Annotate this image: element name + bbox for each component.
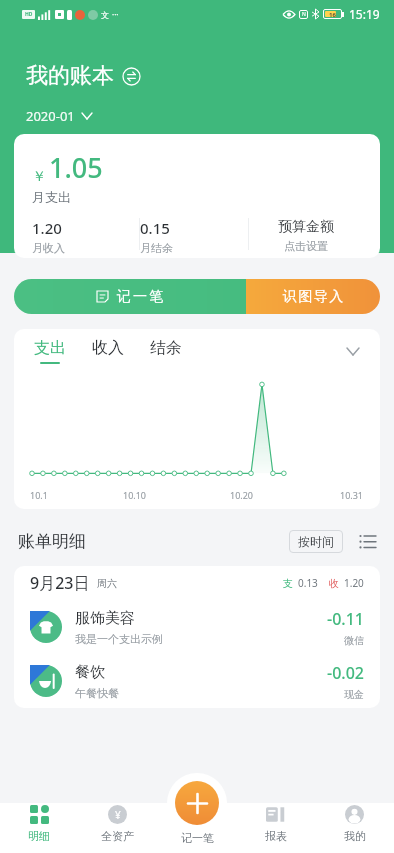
staticText: 10.1 <box>30 489 48 501</box>
staticText: 餐饮 <box>75 663 105 682</box>
staticText: 收入 <box>92 338 124 358</box>
staticText: 明细 <box>28 829 50 843</box>
button[interactable]: 记一笔 <box>14 279 246 314</box>
staticText: 按时间 <box>298 534 334 549</box>
staticText: ¥ <box>115 808 121 822</box>
staticText: 账单明细 <box>18 531 86 552</box>
staticText: ··· <box>112 9 119 20</box>
staticText: 服饰美容 <box>75 609 135 628</box>
button[interactable]: 明细 <box>0 805 78 853</box>
staticText: 支 <box>283 577 293 590</box>
staticText: 月支出 <box>32 189 71 205</box>
staticText: N <box>302 11 306 18</box>
button[interactable]: ¥ <box>78 805 157 853</box>
button[interactable]: 收入 <box>92 338 124 364</box>
staticText: 我的账本 <box>26 62 114 90</box>
staticText: 15:19 <box>349 6 380 22</box>
staticText: 9月23日 <box>30 572 90 594</box>
button[interactable]: 2020-01 <box>26 107 92 125</box>
button[interactable]: 展开 <box>344 342 362 360</box>
staticText: 记一笔 <box>116 288 164 306</box>
staticText: 10.10 <box>123 489 147 501</box>
staticText: 收 <box>329 577 339 590</box>
button[interactable]: 按时间 <box>298 530 334 553</box>
staticText: 2020-01 <box>26 107 75 125</box>
button[interactable]: 报表 <box>236 805 315 853</box>
staticText: 全资产 <box>101 829 134 843</box>
staticText: 0.15 <box>140 218 170 238</box>
staticText: 微信 <box>344 634 364 647</box>
button[interactable]: 识图导入 <box>246 279 380 314</box>
staticText: 我是一个支出示例 <box>75 632 163 646</box>
staticText: 0.13 <box>298 576 318 590</box>
staticText: 点击设置 <box>284 239 328 253</box>
staticText: 识图导入 <box>282 288 344 306</box>
staticText: 月结余 <box>140 241 173 255</box>
staticText: ￥ <box>32 168 46 186</box>
staticText: 月收入 <box>32 241 65 255</box>
staticText: 现金 <box>344 688 364 701</box>
button[interactable]: 餐饮 <box>30 654 364 708</box>
staticText: 支出 <box>34 338 66 358</box>
staticText: 结余 <box>150 338 182 358</box>
staticText: 记一笔 <box>181 831 214 845</box>
button[interactable]: 我的 <box>315 805 394 853</box>
staticText: -0.11 <box>327 608 364 630</box>
staticText: 1.20 <box>32 218 62 238</box>
staticText: 10.20 <box>230 489 254 501</box>
button[interactable]: 切换账本 <box>122 67 141 86</box>
staticText: 16 <box>329 11 336 17</box>
button[interactable]: 记一笔 <box>175 781 219 825</box>
staticText: 我的 <box>344 829 366 843</box>
staticText: 午餐快餐 <box>75 686 119 700</box>
button[interactable]: 支出 <box>34 338 66 364</box>
staticText: 预算金额 <box>278 218 334 236</box>
button[interactable]: 列表视图 <box>356 530 378 552</box>
button[interactable]: 结余 <box>150 338 182 364</box>
button[interactable]: 记一笔 <box>181 831 214 845</box>
staticText: 文 <box>101 10 109 20</box>
staticText: 周六 <box>97 577 117 590</box>
staticText: 报表 <box>265 829 287 843</box>
staticText: HD <box>25 11 33 18</box>
button[interactable]: ￥ <box>14 134 380 258</box>
staticText: 1.20 <box>344 576 364 590</box>
staticText: 1.05 <box>49 149 103 186</box>
staticText: -0.02 <box>327 662 364 684</box>
staticText: 10.31 <box>340 489 364 501</box>
button[interactable]: 服饰美容 <box>30 600 364 654</box>
